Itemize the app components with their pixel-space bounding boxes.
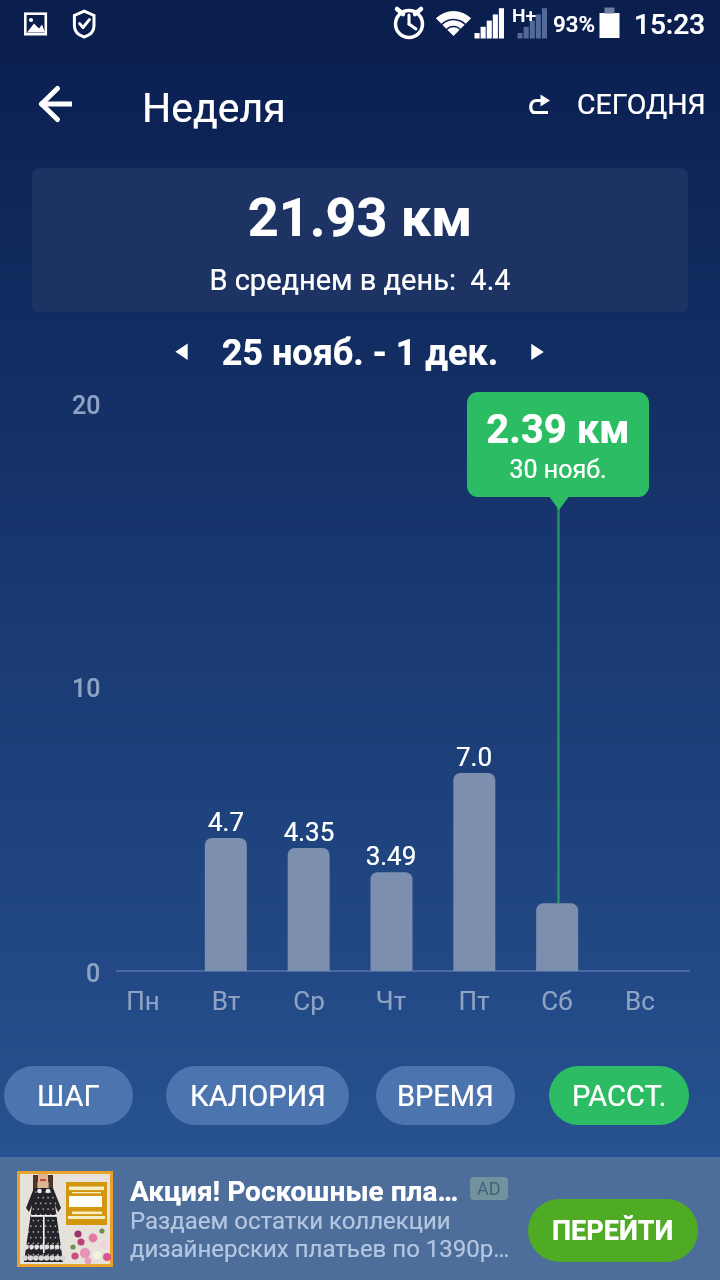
staticText: Пт xyxy=(414,986,534,1016)
staticText: 30 нояб. xyxy=(467,455,649,484)
staticText: ШАГ xyxy=(37,1079,100,1113)
staticText: ПЕРЕЙТИ xyxy=(552,1215,674,1247)
staticText: Ср xyxy=(249,986,369,1016)
staticText: 25 нояб. - 1 дек. xyxy=(0,332,720,374)
staticText: 20 xyxy=(72,391,101,420)
staticText: 15:23 xyxy=(634,8,706,41)
staticText: 4.7 xyxy=(166,807,286,837)
button[interactable]: ШАГ xyxy=(4,1066,133,1125)
button[interactable]: Advertisement image xyxy=(0,1157,720,1280)
button[interactable]: ПЕРЕЙТИ xyxy=(528,1199,698,1262)
staticText: Раздаем остатки коллекции дизайнерских п… xyxy=(130,1207,510,1263)
staticText: H+ xyxy=(512,4,537,26)
staticText: 3.49 xyxy=(331,841,451,871)
staticText: Сб xyxy=(497,986,617,1016)
staticText: Вт xyxy=(166,986,286,1016)
staticText: 7.0 xyxy=(414,742,534,772)
staticText: РАССТ. xyxy=(572,1079,667,1113)
staticText: 21.93 км xyxy=(32,186,688,249)
button[interactable]: ВРЕМЯ xyxy=(376,1066,515,1125)
button[interactable]: Back xyxy=(20,70,90,140)
staticText: 10 xyxy=(72,674,101,703)
button[interactable]: 21.93 км xyxy=(32,168,688,312)
button[interactable]: Next week xyxy=(516,332,560,376)
staticText: Неделя xyxy=(142,84,286,132)
staticText: В среднем в день: 4.4 xyxy=(32,263,688,297)
staticText: Пн xyxy=(83,986,203,1016)
button[interactable]: Previous week xyxy=(160,332,204,376)
staticText: Акция! Роскошные пла… xyxy=(130,1175,459,1208)
staticText: СЕГОДНЯ xyxy=(577,88,706,121)
button[interactable]: КАЛОРИЯ xyxy=(166,1066,349,1125)
staticText: Чт xyxy=(331,986,451,1016)
staticText: 4.35 xyxy=(249,817,369,847)
other: Advertisement image xyxy=(17,1171,113,1267)
staticText: ВРЕМЯ xyxy=(397,1079,494,1113)
staticText: 93% xyxy=(553,11,596,37)
button[interactable]: РАССТ. xyxy=(549,1066,689,1125)
button[interactable]: СЕГОДНЯ xyxy=(528,76,706,132)
staticText: 0 xyxy=(86,959,101,988)
staticText: КАЛОРИЯ xyxy=(190,1079,326,1113)
staticText: 2.39 км xyxy=(467,406,649,453)
staticText: AD xyxy=(477,1178,501,1199)
staticText: Вс xyxy=(580,986,700,1016)
